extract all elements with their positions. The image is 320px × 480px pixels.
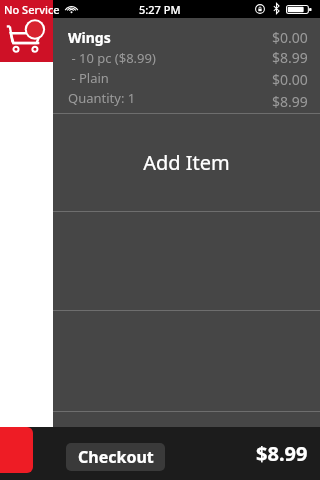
staticText: $8.99 [272, 92, 308, 111]
staticText: $0.00 [272, 70, 308, 89]
staticText: No Service [4, 2, 60, 17]
staticText: $0.00 [272, 28, 308, 47]
staticText: Checkout [78, 446, 154, 468]
button[interactable]: Wings [53, 18, 320, 113]
staticText: $8.99 [272, 48, 308, 67]
staticText: - 10 pc ($8.99) [68, 49, 156, 67]
staticText: $8.99 [256, 440, 308, 467]
staticText: Wings [68, 28, 111, 47]
staticText: 5:27 PM [139, 2, 181, 17]
button[interactable]: Add Item [53, 114, 320, 211]
staticText: - Plain [68, 69, 109, 87]
button[interactable]: Cart, 1 item [0, 18, 53, 62]
staticText: Quantity: 1 [68, 89, 136, 107]
staticText: Add Item [143, 149, 230, 176]
button[interactable]: Checkout [66, 443, 165, 471]
button[interactable]: Menu [0, 427, 33, 473]
